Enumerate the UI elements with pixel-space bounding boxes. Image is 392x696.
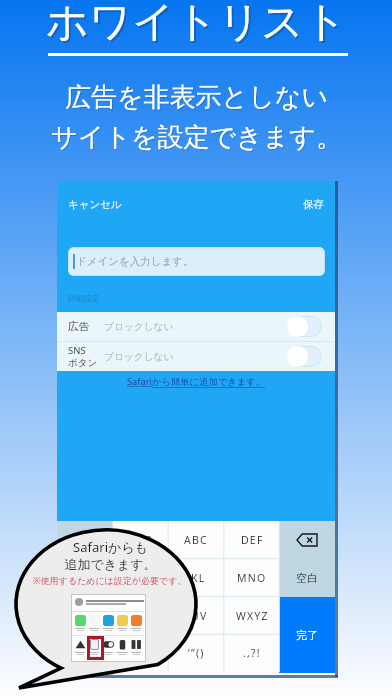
staticText: DEF — [241, 533, 264, 547]
staticText: @#/&_ — [122, 533, 161, 547]
button[interactable]: Backspace — [279, 521, 335, 559]
button[interactable]: Toggle — [288, 316, 322, 337]
button[interactable]: JKL — [168, 559, 224, 597]
button[interactable]: a/A — [113, 634, 169, 672]
staticText: 詳細設定 — [68, 293, 100, 303]
staticText: ドメインを入力します。 — [76, 255, 194, 268]
button[interactable]: ABC — [168, 521, 224, 559]
button[interactable]: ’”() — [168, 634, 224, 672]
staticText: .,?! — [243, 646, 261, 660]
staticText: 保存 — [303, 198, 324, 211]
button[interactable]: TUV — [168, 597, 224, 635]
staticText: TUV — [184, 609, 208, 623]
staticText: 完了 — [296, 628, 318, 642]
staticText: 広告を非表示としない サイトを設定できます。 — [51, 81, 342, 154]
staticText: 広告 — [68, 320, 90, 334]
staticText: Safariからも 追加できます。 — [64, 538, 157, 573]
button[interactable]: 完了 — [279, 597, 335, 673]
button[interactable]: 広告 — [57, 312, 335, 341]
button[interactable]: @#/&_ — [113, 521, 169, 559]
staticText: ブロックしない — [104, 321, 174, 333]
staticText: 広告を非表示としない サイトを設定できます。 — [52, 82, 343, 155]
button[interactable]: Toggle — [288, 346, 322, 367]
button[interactable]: MNO — [224, 559, 280, 597]
button[interactable]: .,?! — [224, 634, 280, 672]
button[interactable]: symbols — [57, 521, 113, 675]
staticText: Safariから簡単に追加できます。 — [127, 375, 266, 388]
button[interactable]: ドメインを入力します。 — [68, 247, 325, 276]
staticText: ホワイトリスト — [46, 0, 347, 49]
staticText: a/A — [131, 646, 152, 660]
button[interactable]: GHI — [113, 559, 169, 597]
staticText: ボタン — [68, 357, 98, 369]
staticText: ブロックしない — [104, 351, 174, 363]
button[interactable]: PQRS — [113, 597, 169, 635]
button[interactable]: 空白 — [279, 559, 335, 597]
button[interactable]: WXYZ — [224, 597, 280, 635]
button[interactable]: キャンセル — [68, 198, 122, 211]
staticText: PQRS — [125, 609, 157, 623]
staticText: ’”() — [188, 646, 205, 660]
staticText: ABC — [184, 533, 208, 547]
staticText: GHI — [130, 571, 153, 585]
button[interactable]: DEF — [224, 521, 280, 559]
staticText: WXYZ — [236, 609, 269, 623]
staticText: 空白 — [296, 571, 318, 585]
staticText: キャンセル — [68, 198, 122, 211]
staticText: ホワイトリスト — [48, 0, 349, 51]
button[interactable]: Safariから簡単に追加できます。 — [127, 375, 266, 388]
button[interactable]: SNS — [57, 342, 335, 371]
staticText: SNS — [68, 344, 86, 357]
staticText: MNO — [237, 571, 267, 585]
staticText: JKL — [187, 571, 206, 585]
staticText: ※使用するためには設定が必要です。 — [33, 574, 187, 586]
button[interactable]: 保存 — [303, 198, 324, 211]
